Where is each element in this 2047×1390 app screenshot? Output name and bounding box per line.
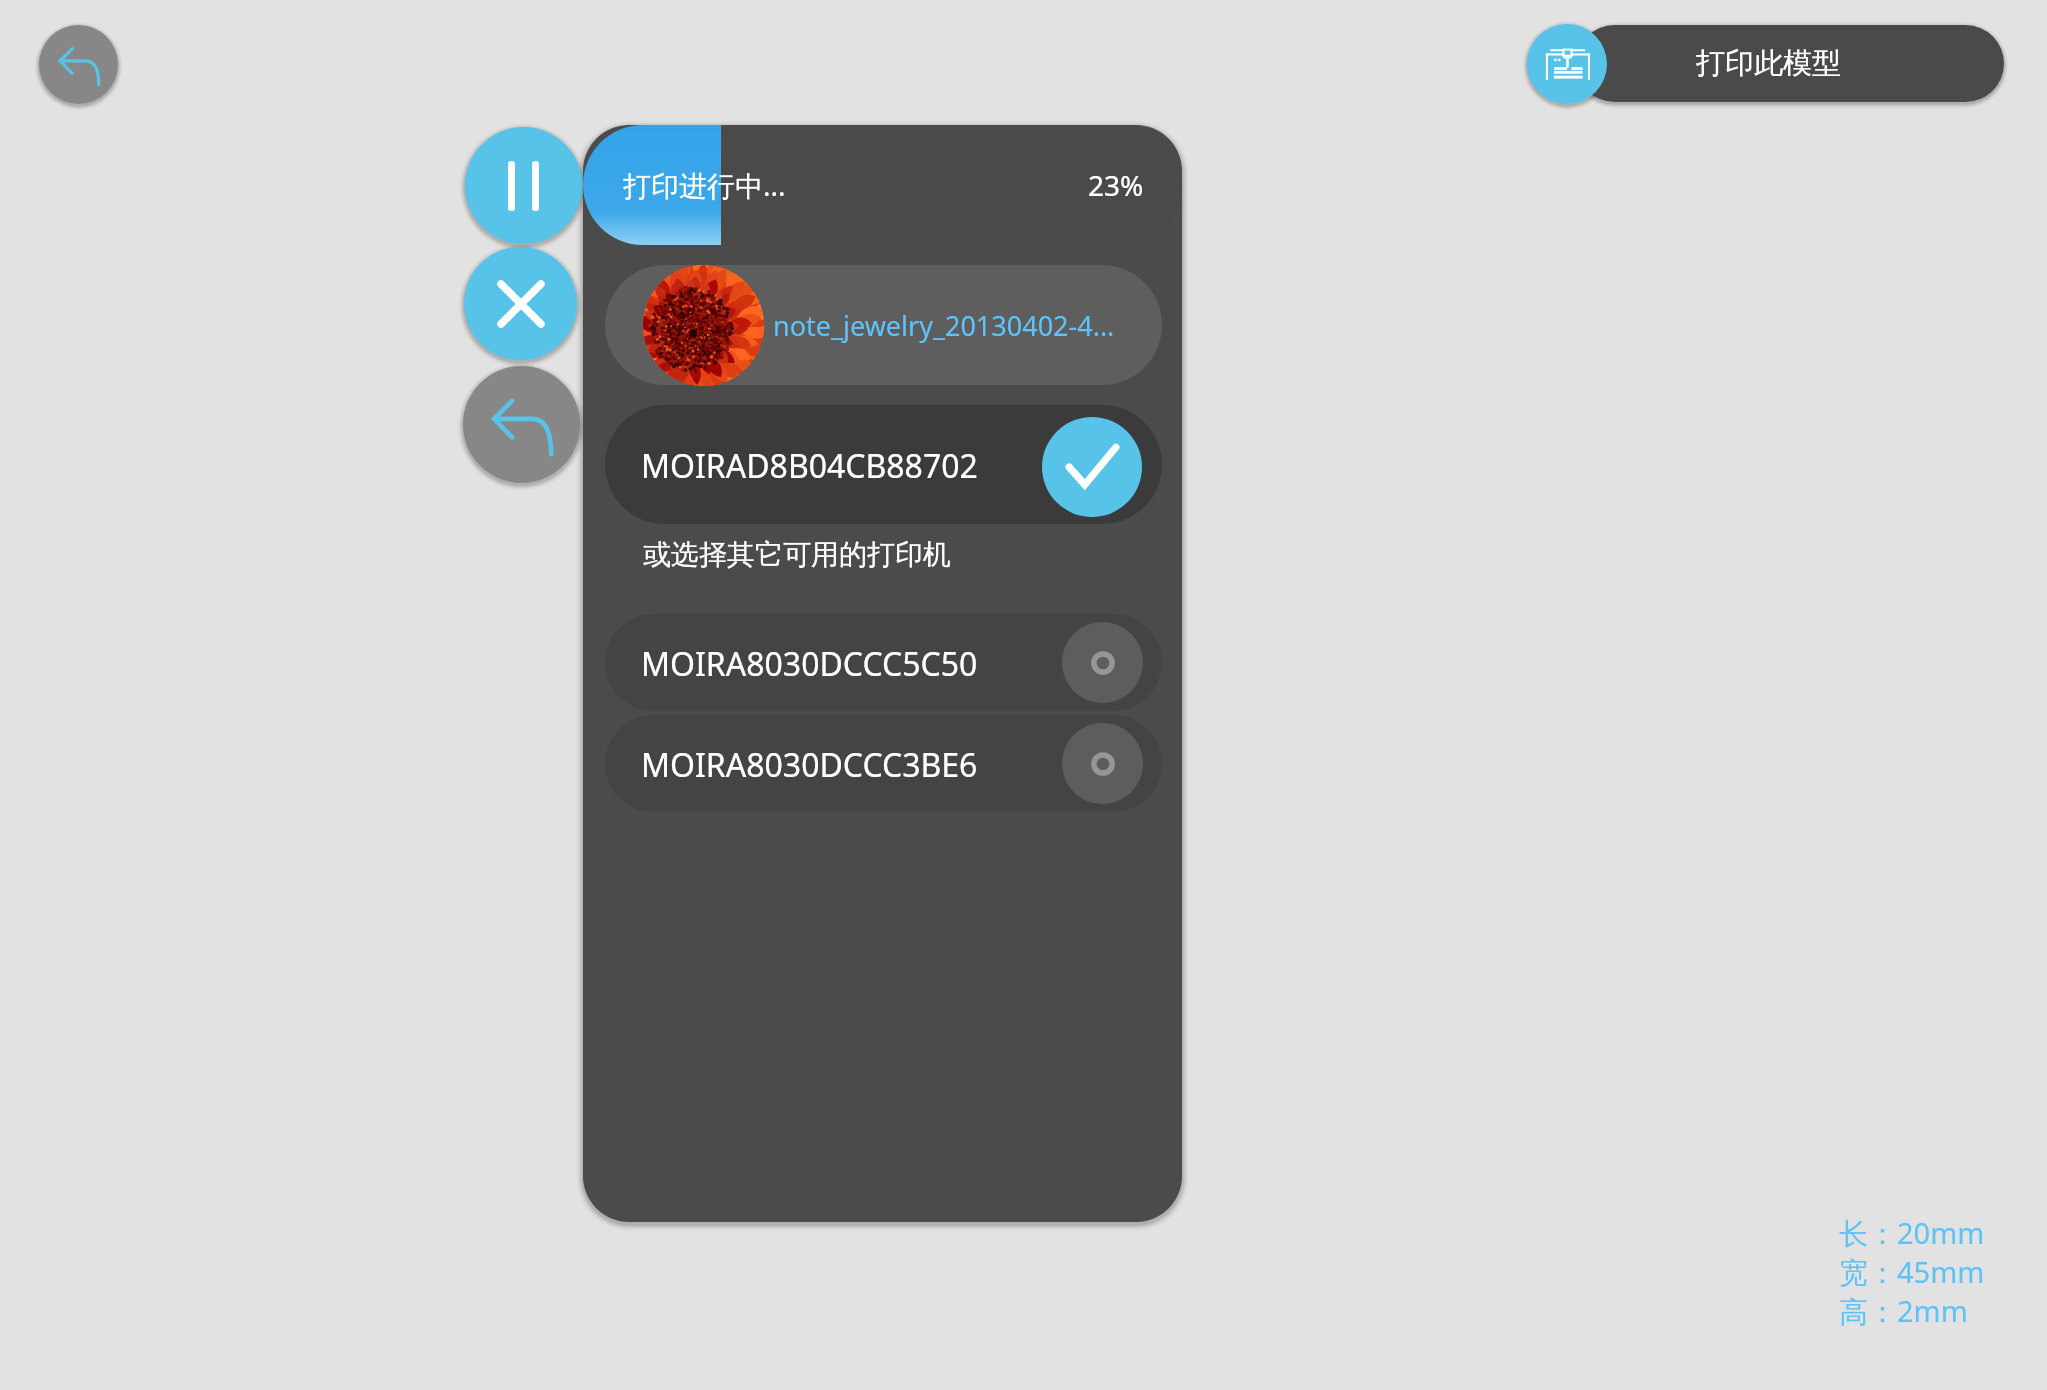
button[interactable]: Cancel <box>464 247 577 360</box>
staticText: note_jewelry_20130402-4... <box>773 307 1115 344</box>
staticText: 宽：45mm <box>1839 1252 1985 1292</box>
staticText: MOIRA8030DCCC5C50 <box>641 642 978 686</box>
staticText: 打印进行中... <box>623 166 786 204</box>
staticText: 23% <box>1088 166 1144 204</box>
button[interactable]: Back <box>39 25 118 104</box>
button[interactable]: note_jewelry_20130402-4... <box>605 264 1162 386</box>
staticText: 或选择其它可用的打印机 <box>643 537 951 572</box>
button[interactable]: Print this model <box>1527 24 1607 104</box>
staticText: 高：2mm <box>1839 1291 1968 1331</box>
button[interactable]: 打印此模型 <box>1576 25 2004 102</box>
button[interactable]: MOIRAD8B04CB88702 <box>605 405 1162 524</box>
staticText: MOIRA8030DCCC3BE6 <box>641 743 978 787</box>
button[interactable]: MOIRA8030DCCC5C50 <box>605 614 1162 711</box>
button[interactable]: MOIRA8030DCCC3BE6 <box>605 715 1162 812</box>
staticText: 打印此模型 <box>1696 45 1841 82</box>
staticText: MOIRAD8B04CB88702 <box>641 444 978 488</box>
button[interactable]: Pause <box>465 127 582 244</box>
button[interactable]: Undo <box>463 366 580 483</box>
staticText: 长：20mm <box>1839 1213 1985 1253</box>
